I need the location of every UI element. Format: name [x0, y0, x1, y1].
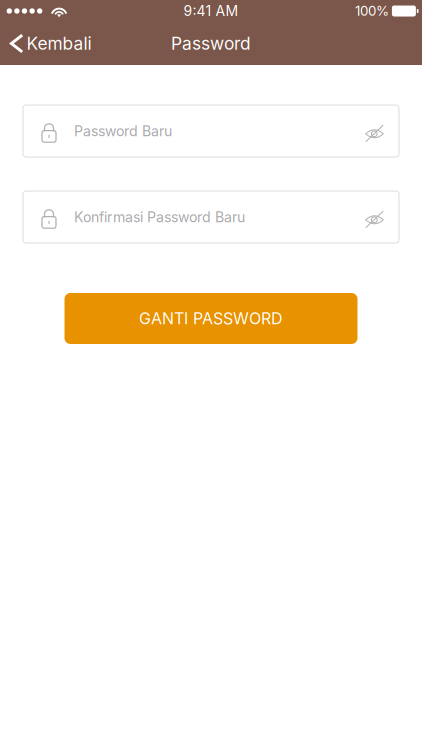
- staticText: Konfirmasi Password Baru: [74, 208, 245, 225]
- staticText: 100%: [355, 3, 389, 19]
- button[interactable]: Kembali: [0, 27, 91, 60]
- button[interactable]: Show password: [365, 111, 399, 151]
- staticText: Password: [171, 33, 251, 54]
- staticText: GANTI PASSWORD: [139, 309, 283, 328]
- button[interactable]: GANTI PASSWORD: [64, 293, 357, 344]
- staticText: 9:41 AM: [183, 2, 238, 19]
- button[interactable]: Show password: [365, 197, 399, 237]
- staticText: Kembali: [26, 33, 91, 54]
- staticText: Password Baru: [74, 122, 172, 139]
